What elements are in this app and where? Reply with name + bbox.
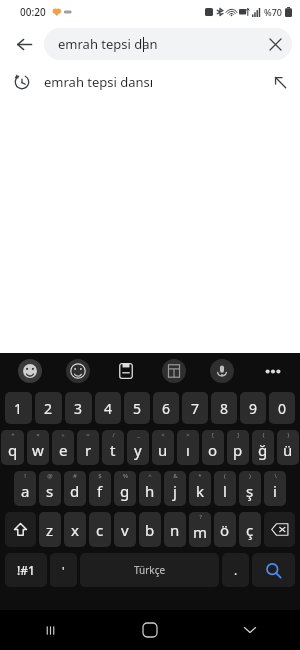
button[interactable]: x [64,512,86,547]
staticText: l [223,481,227,501]
staticText: 1 [14,399,23,418]
staticText: a [21,481,30,501]
button[interactable]: ! [14,471,36,506]
staticText: v [121,520,129,540]
staticText: k [196,481,205,501]
staticText: { [262,431,265,439]
button[interactable]: Back [8,28,40,60]
button[interactable]: Clear [262,31,288,57]
button[interactable]: Insert suggestion [260,64,300,100]
staticText: $ [98,472,102,480]
staticText: 7 [191,399,200,418]
button[interactable]: 8 [211,392,237,424]
button[interactable]: Türkçe [80,553,219,587]
staticText: emrah tepsi dan [58,35,158,53]
staticText: 5 [133,399,142,418]
button[interactable]: ( [214,471,236,506]
button[interactable]: / [102,430,124,465]
button[interactable]: 9 [240,392,266,424]
staticText: p [233,440,243,460]
button[interactable]: ÷ [52,430,74,465]
button[interactable]: 2 [35,392,62,424]
staticText: e [59,440,68,460]
button[interactable]: ? [189,512,211,547]
staticText: ( [224,472,226,480]
button[interactable]: ] [227,430,249,465]
staticText: 00:20 [20,5,46,19]
staticText: z [46,520,54,540]
staticText: q [8,440,18,460]
button[interactable]: Stickers [54,353,102,389]
button[interactable]: More options [246,353,300,389]
button[interactable]: ' [50,553,77,587]
button[interactable]: 5 [124,392,150,424]
button[interactable]: n [164,512,186,547]
staticText: ÷ [61,431,65,439]
staticText: . [234,562,238,578]
button[interactable]: \ [264,471,286,506]
staticText: ı [186,440,190,460]
button[interactable]: Search [252,553,295,587]
button[interactable]: % [114,471,136,506]
staticText: m [193,522,208,542]
button[interactable]: @ [39,471,61,506]
staticText: f [97,481,103,501]
button[interactable]: Voice input [198,353,246,389]
staticText: !#1 [17,562,35,578]
button[interactable]: ö [214,512,236,547]
button[interactable]: 1 [5,392,32,424]
staticText: Türkçe [134,563,166,577]
button[interactable]: Recents [0,610,100,650]
staticText: ' [62,563,65,578]
staticText: & [173,472,178,480]
staticText: %70 [264,6,282,18]
staticText: ) [249,472,251,480]
staticText: ö [220,520,230,540]
button[interactable]: Clipboard [102,353,150,389]
button[interactable]: 4 [95,392,121,424]
button[interactable]: * [189,471,211,506]
button[interactable]: × [27,430,49,465]
button[interactable]: # [64,471,86,506]
button[interactable]: emrah tepsi dansı [0,64,300,100]
button[interactable]: $ [89,471,111,506]
button[interactable]: ) [239,471,261,506]
button[interactable]: Layout [150,353,198,389]
button[interactable]: ç [239,512,261,547]
button[interactable]: Emoji [6,353,54,389]
button[interactable]: z [39,512,61,547]
button[interactable]: Backspace [264,512,295,547]
button[interactable]: c [89,512,111,547]
button[interactable]: } [277,430,299,465]
button[interactable]: [ [202,430,224,465]
button[interactable]: < [152,430,174,465]
button[interactable]: & [164,471,186,506]
button[interactable]: = [77,430,99,465]
button[interactable]: ^ [139,471,161,506]
button[interactable]: 0 [269,392,295,424]
staticText: < [161,431,165,439]
button[interactable]: . [222,553,249,587]
button[interactable]: 3 [65,392,92,424]
button[interactable]: !#1 [5,553,47,587]
button[interactable]: b [139,512,161,547]
staticText: ! [24,472,26,480]
button[interactable]: { [252,430,274,465]
staticText: ^ [148,472,152,480]
staticText: n [170,520,180,540]
button[interactable]: _ [127,430,149,465]
staticText: / [112,431,115,439]
button[interactable]: 6 [153,392,179,424]
button[interactable]: + [1,430,24,465]
button[interactable]: Shift [5,512,36,547]
button[interactable]: 7 [182,392,208,424]
staticText: @ [47,472,53,480]
button[interactable]: Home [100,610,200,650]
button[interactable]: Hide keyboard [200,610,300,650]
staticText: r [85,440,92,460]
staticText: + [11,431,15,439]
staticText: y [134,440,142,460]
button[interactable]: emrah tepsi dan [44,28,292,60]
button[interactable]: v [114,512,136,547]
button[interactable]: > [177,430,199,465]
